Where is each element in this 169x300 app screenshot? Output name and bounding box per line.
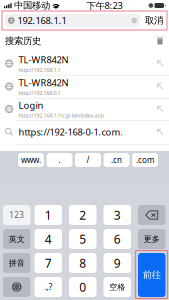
- button[interactable]: Switch keyboard: [3, 277, 30, 297]
- button[interactable]: www.: [18, 153, 44, 167]
- staticText: .,?: [45, 282, 52, 292]
- button[interactable]: 拼音: [3, 253, 30, 273]
- staticText: 中国移动: [14, 0, 50, 11]
- button[interactable]: Clear: [131, 18, 137, 23]
- staticText: .: [58, 155, 60, 165]
- button[interactable]: 前往: [138, 253, 165, 297]
- button[interactable]: TL-WR842N: [0, 75, 169, 98]
- button[interactable]: TL-WR842N: [0, 52, 169, 75]
- staticText: 192.168.1.1: [18, 14, 67, 27]
- staticText: http://192.168.1.1/cgi-bin/index.asp: [18, 112, 103, 119]
- staticText: 9: [114, 255, 121, 271]
- button[interactable]: 2: [69, 205, 96, 225]
- staticText: 4: [45, 231, 52, 247]
- staticText: 下午8:23: [86, 0, 122, 12]
- button[interactable]: 3: [103, 205, 131, 225]
- staticText: 更多: [144, 234, 160, 244]
- staticText: 2: [79, 207, 86, 223]
- staticText: 取消: [145, 15, 163, 26]
- button[interactable]: 6: [103, 229, 131, 249]
- staticText: TL-WR842N: [18, 53, 68, 66]
- staticText: /: [86, 155, 89, 165]
- button[interactable]: 4: [34, 229, 62, 249]
- staticText: 7: [45, 255, 52, 271]
- button[interactable]: 8: [69, 253, 96, 273]
- button[interactable]: Login: [0, 98, 169, 120]
- button[interactable]: 7: [34, 253, 62, 273]
- staticText: Login: [18, 99, 43, 111]
- button[interactable]: 空格: [103, 277, 131, 297]
- staticText: 搜索历史: [5, 35, 41, 47]
- staticText: http://192.168.0.1: [18, 89, 60, 96]
- button[interactable]: 5: [69, 229, 96, 249]
- button[interactable]: 0: [69, 277, 96, 297]
- button[interactable]: .cn: [103, 153, 129, 167]
- staticText: 5: [79, 231, 86, 247]
- button[interactable]: 取消: [144, 14, 164, 27]
- staticText: TL-WR842N: [18, 76, 68, 89]
- staticText: 0: [79, 279, 86, 295]
- staticText: .com: [136, 155, 154, 165]
- staticText: 前往: [143, 269, 161, 281]
- staticText: 拼音: [9, 258, 25, 268]
- button[interactable]: https://192-168-0-1.com.: [0, 120, 169, 144]
- staticText: 123: [9, 210, 24, 220]
- button[interactable]: .com: [132, 153, 158, 167]
- staticText: 3: [114, 207, 121, 223]
- staticText: 空格: [109, 282, 125, 292]
- staticText: 6: [114, 231, 121, 247]
- staticText: 英文: [9, 234, 25, 244]
- button[interactable]: Clear history: [156, 37, 164, 45]
- staticText: .cn: [111, 155, 122, 165]
- button[interactable]: .: [46, 153, 72, 167]
- button[interactable]: 更多: [138, 229, 165, 249]
- button[interactable]: 9: [103, 253, 131, 273]
- button[interactable]: .,?: [34, 277, 62, 297]
- button[interactable]: Delete: [138, 205, 165, 225]
- button[interactable]: /: [75, 153, 101, 167]
- button[interactable]: 1: [34, 205, 62, 225]
- button[interactable]: 英文: [3, 229, 30, 249]
- staticText: http://192.168.1.1: [18, 66, 60, 73]
- staticText: 1: [45, 207, 52, 223]
- staticText: www.: [21, 155, 41, 165]
- button[interactable]: 123: [3, 205, 30, 225]
- staticText: https://192-168-0-1.com.: [18, 126, 123, 138]
- staticText: 8: [79, 255, 86, 271]
